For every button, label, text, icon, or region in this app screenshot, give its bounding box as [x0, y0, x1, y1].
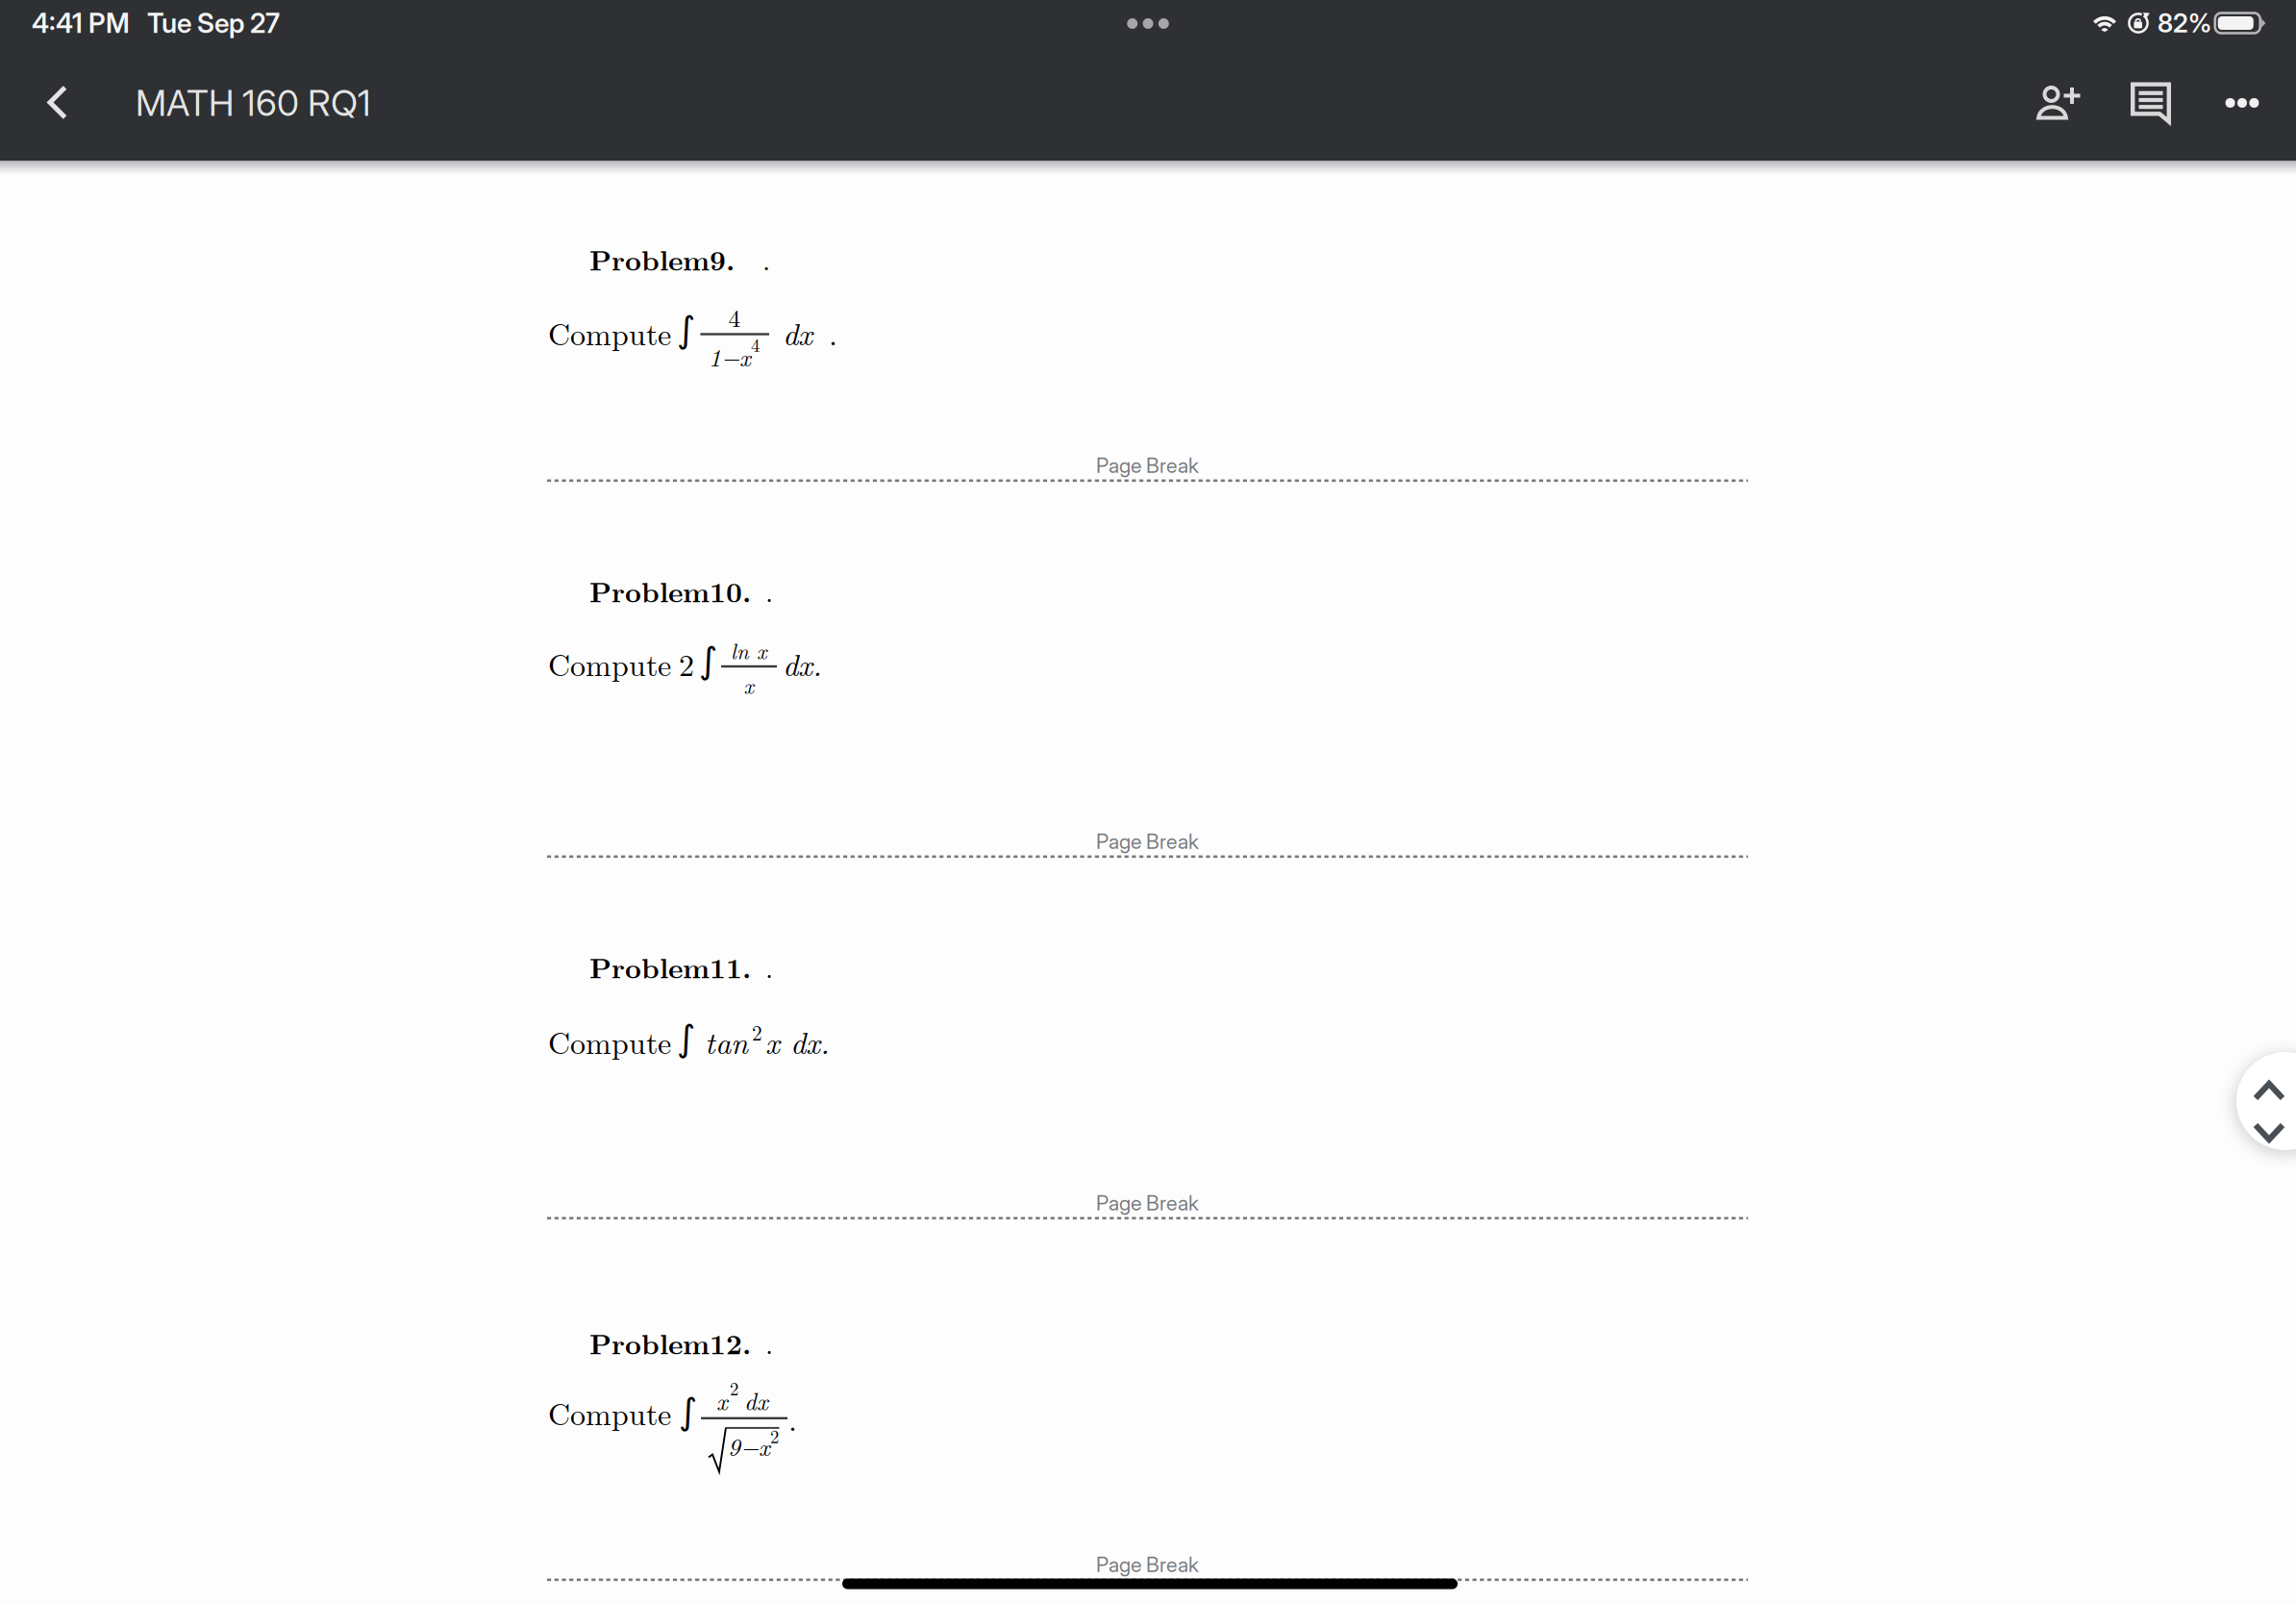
- button[interactable]: Back: [13, 61, 102, 144]
- staticText: .: [788, 1396, 797, 1440]
- staticText: 1−x: [709, 339, 751, 373]
- staticText: 4: [728, 299, 741, 334]
- staticText: Compute: [548, 641, 671, 685]
- staticText: Page Break: [1096, 1191, 1199, 1215]
- staticText: tan: [705, 1019, 748, 1063]
- staticText: 4: [751, 331, 760, 357]
- staticText: 2: [752, 1017, 762, 1046]
- staticText: 2: [679, 641, 694, 685]
- staticText: Page Break: [1096, 1552, 1199, 1577]
- staticText: Page Break: [1096, 453, 1199, 478]
- staticText: .: [762, 238, 770, 278]
- button[interactable]: Previous or next page: [0, 0, 98, 98]
- staticText: 4:41 PM Tue Sep 27: [32, 7, 280, 39]
- button[interactable]: Comments: [2105, 62, 2197, 144]
- staticText: .: [765, 946, 773, 986]
- staticText: 9−x: [728, 1429, 770, 1463]
- staticText: Compute: [548, 311, 671, 354]
- staticText: ∫: [677, 1017, 695, 1059]
- staticText: 2: [770, 1423, 779, 1448]
- staticText: 2: [730, 1375, 738, 1401]
- staticText: ln x: [731, 635, 767, 666]
- staticText: dx: [783, 311, 812, 354]
- staticText: Problem9.: [589, 238, 735, 279]
- button[interactable]: Add people: [2007, 53, 2099, 136]
- button[interactable]: More options: [2196, 62, 2288, 144]
- staticText: x dx.: [765, 1019, 830, 1063]
- staticText: x: [744, 669, 754, 700]
- staticText: ∫: [679, 1391, 697, 1432]
- staticText: .: [765, 570, 773, 610]
- staticText: ∫: [677, 309, 695, 351]
- staticText: x: [716, 1383, 728, 1417]
- staticText: Problem10.: [589, 570, 751, 611]
- staticText: Problem11.: [589, 946, 751, 987]
- staticText: MATH 160 RQ1: [136, 81, 371, 125]
- staticText: Problem12.: [589, 1322, 751, 1363]
- staticText: dx: [744, 1383, 768, 1417]
- staticText: Compute: [548, 1391, 671, 1434]
- staticText: .: [829, 311, 837, 354]
- staticText: ∫: [699, 639, 717, 681]
- staticText: dx.: [783, 641, 822, 685]
- staticText: 82%: [2158, 8, 2211, 39]
- staticText: Compute: [548, 1019, 671, 1063]
- staticText: .: [765, 1322, 773, 1362]
- staticText: Page Break: [1096, 829, 1199, 854]
